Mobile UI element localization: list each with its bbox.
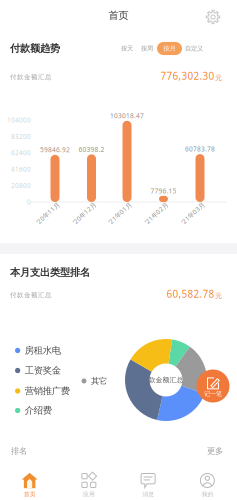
staticText: 自定义 — [185, 45, 203, 52]
staticText: 按周 — [141, 45, 153, 52]
staticText: 按天 — [121, 45, 133, 52]
staticText: 本月支出类型排名 — [10, 266, 90, 279]
staticText: 20800 — [11, 181, 31, 190]
staticText: 营销推广费 — [25, 385, 70, 397]
button[interactable]: 按天 — [121, 45, 133, 52]
button[interactable]: 按周 — [141, 45, 153, 52]
staticText: 7796.15 — [150, 186, 176, 195]
staticText: 0 — [27, 198, 31, 206]
staticText: 房租水电 — [25, 345, 61, 356]
staticText: 62400 — [11, 148, 31, 157]
staticText: 排名 — [11, 446, 27, 456]
staticText: 记一笔 — [204, 390, 222, 398]
staticText: '21年02月 — [142, 211, 171, 219]
staticText: 41600 — [11, 165, 31, 173]
staticText: 我的 — [201, 490, 213, 498]
staticText: 按月 — [163, 45, 175, 52]
staticText: 59846.92 — [40, 145, 70, 154]
staticText: 更多 — [207, 446, 223, 456]
staticText: 消息 — [142, 490, 154, 498]
staticText: 付款额趋势 — [10, 42, 60, 55]
staticText: 104000 — [7, 116, 31, 124]
button[interactable]: 设置 — [199, 3, 227, 31]
staticText: 60398.2 — [78, 145, 104, 154]
staticText: '20年12月 — [70, 211, 99, 219]
staticText: 83200 — [11, 132, 31, 141]
button[interactable]: 应用 — [59, 466, 118, 500]
staticText: 付款金额汇总 — [10, 291, 52, 299]
button[interactable]: 消息 — [118, 466, 178, 500]
staticText: 776,302.30 — [160, 69, 214, 83]
staticText: 应用 — [83, 490, 95, 498]
staticText: 首页 — [108, 9, 128, 22]
button[interactable]: 自定义 — [185, 45, 203, 52]
staticText: 介绍费 — [25, 405, 52, 416]
button[interactable]: 更多 — [183, 445, 223, 457]
staticText: 元 — [215, 74, 222, 82]
staticText: '20年11月 — [34, 211, 63, 219]
staticText: '21年01月 — [106, 211, 135, 219]
button[interactable]: 首页 — [0, 466, 59, 500]
button[interactable]: 按月 — [157, 42, 182, 55]
staticText: 元 — [215, 292, 222, 300]
button[interactable]: 记一笔 — [195, 368, 230, 403]
staticText: 其它 — [91, 376, 107, 386]
staticText: 60,582.78 — [166, 287, 214, 301]
staticText: 60783.78 — [185, 145, 215, 153]
staticText: 付款金额汇总 — [10, 73, 52, 81]
staticText: 首页 — [24, 490, 36, 498]
staticText: '21年03月 — [179, 211, 208, 219]
staticText: 工资奖金 — [25, 365, 61, 376]
staticText: 款金额汇总 — [148, 376, 183, 384]
button[interactable]: 我的 — [178, 466, 237, 500]
staticText: 103018.47 — [110, 111, 144, 120]
